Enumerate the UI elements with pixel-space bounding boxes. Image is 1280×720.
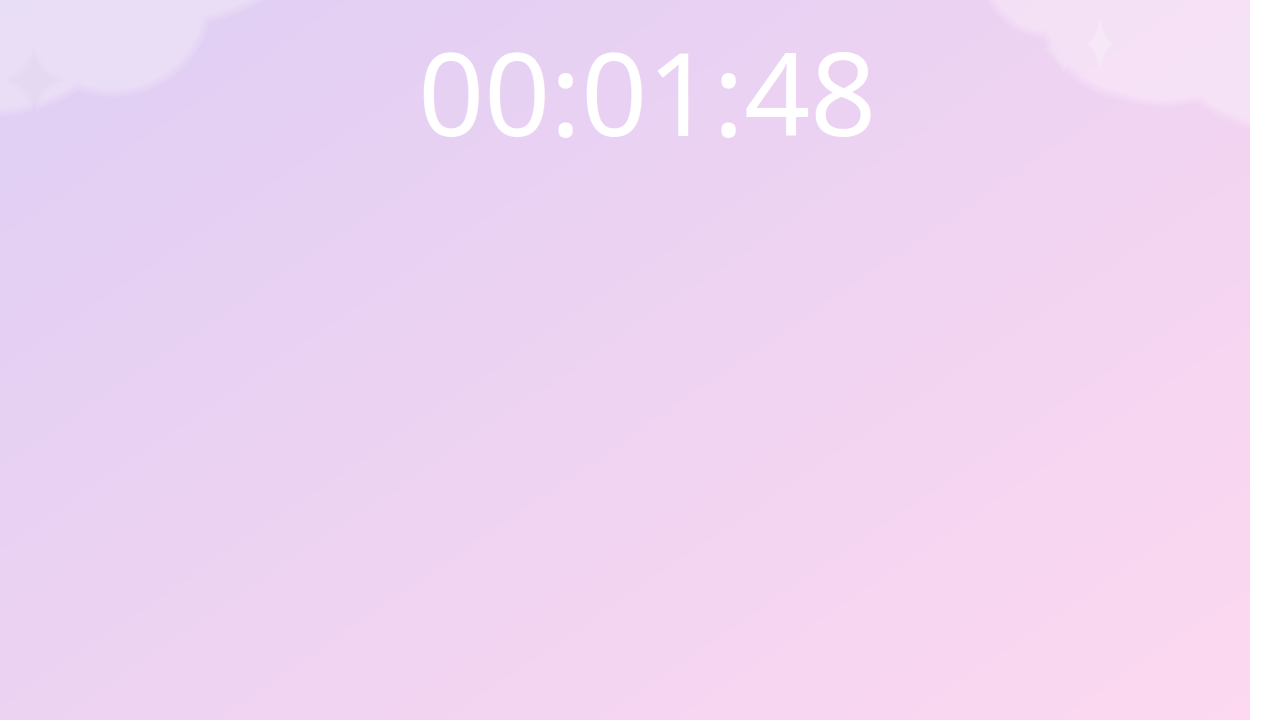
staticText: 00:01:48 bbox=[418, 14, 876, 168]
